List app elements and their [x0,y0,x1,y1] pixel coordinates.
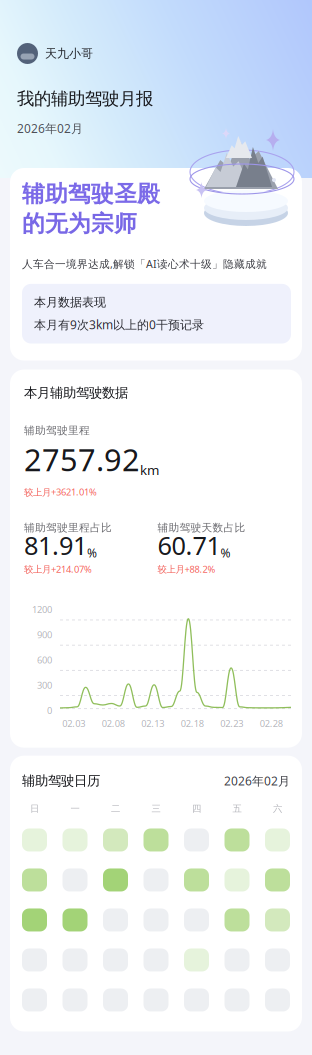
staticText: 三 [151,803,160,814]
staticText: 81.91 [24,528,87,562]
staticText: 的无为宗师 [22,210,137,238]
staticText: 天九小哥 [45,46,93,61]
staticText: 02.18 [181,717,204,730]
button[interactable]: 天九小哥 [17,43,93,64]
staticText: 较上月+3621.01% [24,486,97,498]
staticText: 人车合一境界达成,解锁「AI读心术十级」隐藏成就 [22,257,267,271]
staticText: 辅助驾驶日历 [22,773,100,789]
staticText: 一 [70,803,79,814]
staticText: 辅助驾驶天数占比 [157,521,245,534]
staticText: 本月辅助驾驶数据 [24,384,128,401]
staticText: 2026年02月 [224,773,290,789]
staticText: 四 [192,803,201,814]
staticText: 辅助驾驶里程 [24,424,90,437]
staticText: 02.03 [62,717,85,730]
staticText: 0 [47,704,52,716]
staticText: 02.08 [102,717,125,730]
staticText: 2026年02月 [17,120,83,136]
staticText: 五 [232,803,241,814]
staticText: 辅助驾驶里程占比 [24,521,112,534]
staticText: 900 [37,628,52,641]
staticText: 2757.92 [24,439,140,480]
staticText: 我的辅助驾驶月报 [17,88,153,109]
staticText: 日 [30,803,39,814]
staticText: 02.23 [220,717,243,730]
staticText: 本月数据表现 [34,295,106,309]
staticText: 六 [273,803,282,814]
staticText: 1200 [32,603,52,616]
staticText: 600 [37,654,52,666]
staticText: 60.71 [157,528,220,562]
staticText: 辅助驾驶圣殿 [22,180,160,208]
staticText: % [87,545,97,561]
staticText: 300 [37,679,52,691]
staticText: % [220,545,230,561]
staticText: 较上月+214.07% [24,563,92,575]
staticText: 较上月+88.2% [157,563,215,575]
staticText: 02.13 [141,717,164,730]
staticText: 本月有9次3km以上的0干预记录 [34,317,204,332]
staticText: km [140,461,159,479]
staticText: 二 [111,803,120,814]
staticText: 02.28 [260,717,283,730]
